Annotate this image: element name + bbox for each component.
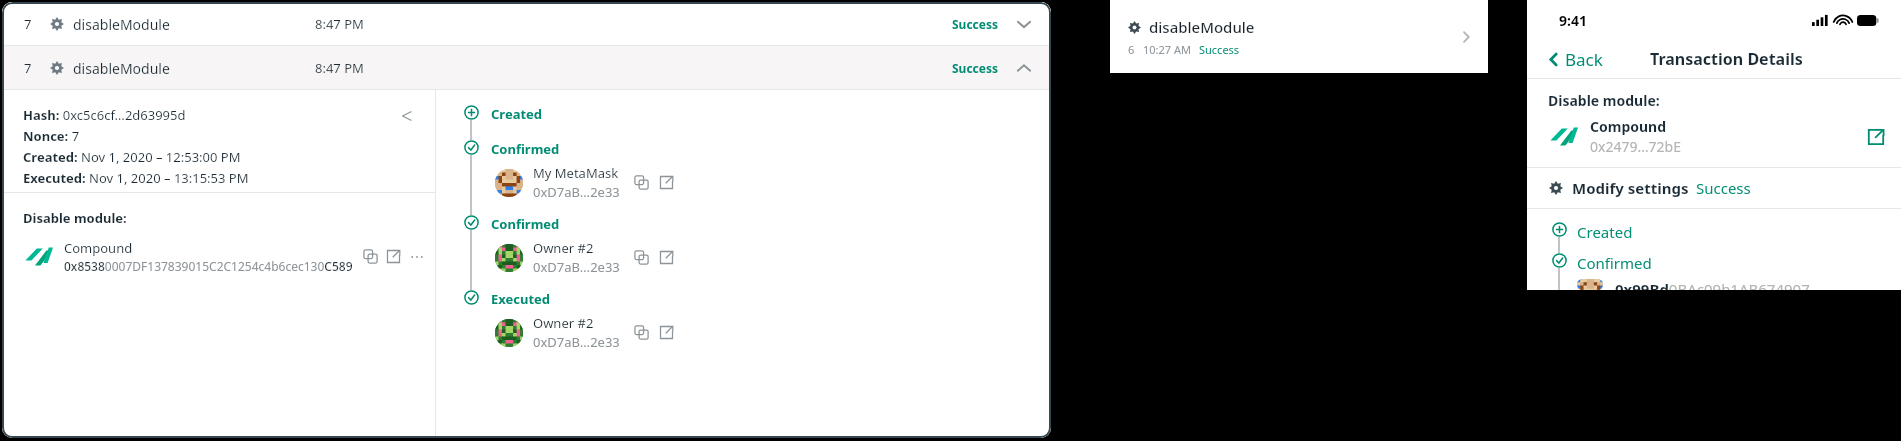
staticText: Disable module: [23, 209, 127, 227]
staticText: Executed [491, 290, 551, 308]
staticText: 0xD7aB…2e33 [533, 258, 620, 276]
staticText: 8:47 PM [315, 59, 364, 77]
staticText: disableModule [1149, 17, 1255, 37]
staticText: Nonce: 7 [23, 127, 80, 145]
staticText: Hash: 0xc5c6cf…2d63995d [23, 106, 186, 124]
staticText: Owner #2 [533, 314, 594, 332]
button[interactable]: Open in explorer [659, 250, 674, 265]
staticText: 9:41 [1559, 11, 1587, 30]
staticText: Created [491, 105, 543, 123]
staticText: Created: Nov 1, 2020 – 12:53:00 PM [23, 148, 241, 166]
staticText: Back [1565, 48, 1603, 71]
button[interactable]: Copy address [634, 250, 649, 265]
button[interactable]: Modify settings [1527, 168, 1901, 208]
staticText: Compound [64, 239, 133, 257]
button[interactable]: Open in explorer [659, 325, 674, 340]
staticText: Transaction Details [1650, 48, 1803, 70]
staticText: Success [952, 16, 999, 32]
button[interactable]: Open in explorer [1867, 128, 1885, 146]
staticText: Success [952, 60, 999, 76]
staticText: Success [1199, 42, 1240, 57]
staticText: 0x2479…72bE [1590, 137, 1681, 156]
button[interactable]: Copy address [634, 175, 649, 190]
staticText: 0x99Bd0BAc09b1AB674907 [1615, 279, 1810, 290]
staticText: 8:47 PM [315, 15, 364, 33]
button[interactable]: Open in explorer [659, 175, 674, 190]
button[interactable]: Open in explorer [386, 249, 401, 264]
button[interactable]: Copy address [634, 325, 649, 340]
staticText: 7 [24, 15, 32, 33]
staticText: Created [1577, 222, 1633, 242]
button[interactable]: Copy address [363, 249, 378, 264]
staticText: Modify settings [1572, 178, 1689, 198]
staticText: Confirmed [491, 215, 560, 233]
button[interactable]: disableModule [1110, 0, 1488, 73]
staticText: 10:27 AM [1143, 42, 1191, 57]
staticText: Executed: Nov 1, 2020 – 13:15:53 PM [23, 169, 249, 187]
button[interactable]: 7 [2, 2, 1051, 45]
staticText: My MetaMask [533, 164, 619, 182]
staticText: 0xD7aB…2e33 [533, 183, 620, 201]
button[interactable]: Back [1541, 44, 1607, 75]
staticText: Success [1696, 178, 1751, 198]
staticText: 0x85380007DF137839015C2C1254c4b6cec130C5… [64, 258, 353, 274]
button[interactable]: More options [409, 249, 425, 265]
button[interactable]: 7 [2, 46, 1051, 89]
staticText: disableModule [73, 15, 170, 34]
staticText: disableModule [73, 59, 170, 78]
button[interactable]: Share [399, 108, 415, 124]
staticText: Confirmed [491, 140, 560, 158]
staticText: 7 [24, 59, 32, 77]
staticText: Disable module: [1548, 91, 1660, 110]
staticText: Owner #2 [533, 239, 594, 257]
staticText: 6 [1128, 42, 1135, 57]
staticText: Confirmed [1577, 253, 1652, 273]
staticText: 0xD7aB…2e33 [533, 333, 620, 351]
staticText: Compound [1590, 117, 1667, 136]
